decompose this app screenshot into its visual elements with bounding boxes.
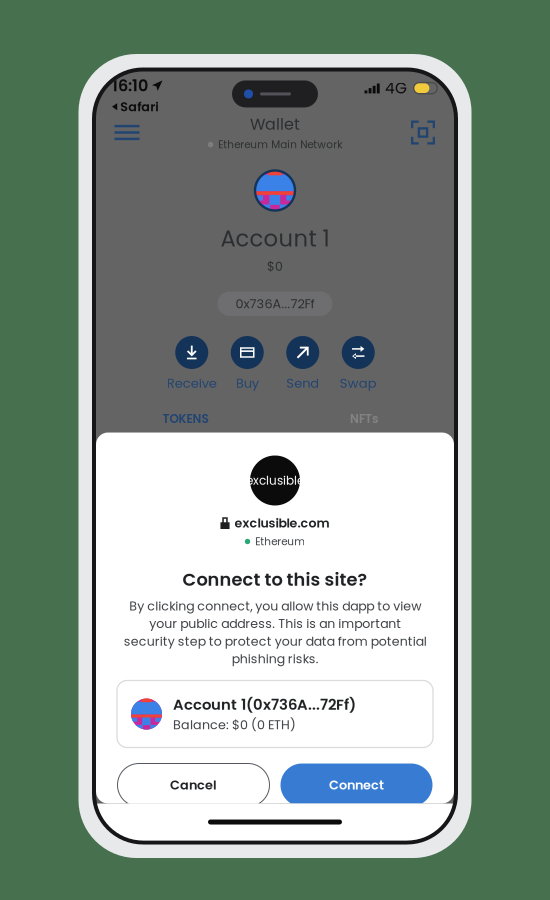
staticText: Connect to this site? bbox=[182, 567, 367, 592]
button[interactable]: Account 1(0x736A...72Ff) bbox=[117, 680, 433, 747]
staticText: Connect bbox=[329, 776, 384, 794]
staticText: Swap bbox=[340, 374, 377, 392]
staticText: Account 1 bbox=[220, 223, 329, 254]
staticText: Receive bbox=[167, 374, 217, 392]
button[interactable]: Scan QR code bbox=[400, 112, 446, 152]
staticText: exclusible.com bbox=[235, 514, 330, 532]
staticText: Ethereum bbox=[255, 534, 305, 549]
staticText: exclusible bbox=[246, 472, 304, 489]
staticText: Safari bbox=[120, 98, 159, 115]
button[interactable]: Swap bbox=[330, 336, 386, 392]
staticText: Send bbox=[286, 374, 319, 392]
staticText: Buy bbox=[236, 374, 259, 392]
staticText: By clicking connect, you allow this dapp… bbox=[123, 597, 426, 668]
button[interactable]: Receive bbox=[164, 336, 219, 392]
button[interactable]: Buy bbox=[219, 336, 275, 392]
button[interactable]: Menu bbox=[104, 112, 150, 152]
staticText: Cancel bbox=[170, 776, 217, 794]
staticText: Balance: $0 (0 ETH) bbox=[173, 716, 296, 734]
staticText: 4G bbox=[385, 77, 407, 99]
staticText: 0x736A...72Ff bbox=[235, 295, 314, 313]
staticText: $0 bbox=[267, 258, 283, 275]
staticText: Ethereum Main Network bbox=[218, 137, 342, 152]
staticText: TOKENS bbox=[162, 410, 208, 427]
button[interactable]: Connect bbox=[280, 763, 432, 806]
staticText: Account 1(0x736A...72Ff) bbox=[173, 694, 356, 715]
staticText: 16:10 bbox=[112, 74, 148, 97]
button[interactable]: Cancel bbox=[117, 763, 269, 806]
button[interactable]: Send bbox=[275, 336, 330, 392]
staticText: Wallet bbox=[250, 113, 300, 135]
staticText: NFTs bbox=[350, 410, 379, 427]
